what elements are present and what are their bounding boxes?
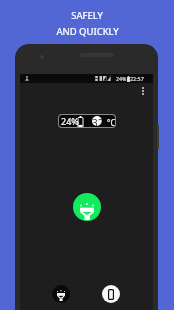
staticText: 22:57 — [130, 75, 144, 82]
staticText: °C — [107, 117, 115, 127]
staticText: AND QUICKLY — [56, 25, 119, 38]
staticText: 24% — [61, 115, 79, 127]
button[interactable]: 24% — [59, 115, 115, 127]
button[interactable]: Device info — [102, 285, 120, 303]
button[interactable]: Clean — [52, 285, 70, 303]
button[interactable]: More options — [138, 84, 148, 98]
staticText: SAFELY — [71, 9, 103, 22]
staticText: 32 — [92, 116, 102, 126]
button[interactable]: Clean junk — [73, 193, 101, 221]
staticText: 24% — [116, 75, 127, 82]
